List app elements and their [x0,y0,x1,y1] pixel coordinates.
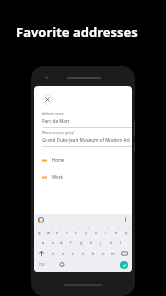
button[interactable]: , [49,259,58,270]
button[interactable]: d [57,237,66,248]
button[interactable]: 9 [111,226,121,237]
staticText: b [92,251,95,256]
button[interactable]: Emoji [58,259,66,270]
staticText: Parc de Mart [42,118,70,124]
staticText: p [125,230,128,235]
staticText: c [72,251,74,256]
staticText: ?123 [39,263,45,267]
button[interactable]: z [48,248,58,259]
button[interactable]: Home [42,154,132,166]
button[interactable]: a [39,237,48,248]
staticText: Where are you going? [42,131,75,135]
staticText: r [66,230,68,235]
staticText: 9 [118,227,120,230]
staticText: 3 [60,227,62,230]
button[interactable]: h [86,237,96,248]
button[interactable]: 5 [71,226,81,237]
button[interactable]: f [66,237,76,248]
button[interactable]: x [58,248,68,259]
staticText: q [38,230,41,235]
button[interactable]: 1 [35,226,44,237]
staticText: 4 [69,227,71,230]
staticText: a [42,240,45,245]
staticText: 5 [78,227,80,230]
button[interactable]: n [98,248,108,259]
button[interactable]: 4 [62,226,71,237]
staticText: f [70,240,72,245]
staticText: Home [52,157,65,163]
staticText: 0 [128,227,130,230]
staticText: j [100,240,102,245]
button[interactable]: 6 [81,226,91,237]
staticText: Address name [42,112,64,116]
button[interactable]: 7 [91,226,101,237]
button[interactable]: b [88,248,98,259]
button[interactable]: Shift [35,248,48,259]
staticText: t [75,230,77,235]
staticText: l [120,240,122,245]
button[interactable]: Close [42,94,53,105]
button[interactable]: Address name [42,112,132,128]
staticText: h [90,240,93,245]
staticText: s [52,240,54,245]
staticText: . [112,262,114,267]
button[interactable]: j [96,237,106,248]
staticText: 2 [51,227,53,230]
button[interactable]: c [68,248,78,259]
staticText: , [53,262,55,267]
button[interactable]: 3 [53,226,62,237]
button[interactable]: s [48,237,57,248]
staticText: 6 [88,227,90,230]
staticText: m [111,251,115,256]
staticText: w [47,230,51,235]
staticText: k [110,240,113,245]
staticText: v [82,251,85,256]
staticText: d [60,240,63,245]
staticText: o [115,230,118,235]
staticText: x [62,251,65,256]
staticText: z [52,251,54,256]
staticText: 1 [42,227,44,230]
staticText: Favorite addresses [16,23,138,41]
staticText: e [56,230,59,235]
staticText: i [105,230,107,235]
button[interactable]: k [106,237,116,248]
button[interactable]: g [76,237,86,248]
staticText: 7 [98,227,100,230]
button[interactable]: 8 [101,226,111,237]
button[interactable]: Backspace [118,248,131,259]
button[interactable]: Where are you going? [42,131,132,147]
staticText: Work [52,174,63,180]
button[interactable]: v [78,248,88,259]
staticText: y [85,230,88,235]
button[interactable]: 2 [44,226,53,237]
button[interactable]: More options [123,216,128,223]
button[interactable]: Google [38,217,44,223]
staticText: 8 [108,227,110,230]
staticText: n [102,251,105,256]
button[interactable]: Work [42,171,132,183]
staticText: Grand Duke Jean Museum of Modern Art [42,137,130,143]
staticText: u [95,230,98,235]
staticText: g [80,240,83,245]
button[interactable]: 0 [121,226,131,237]
button[interactable]: l [116,237,126,248]
button[interactable]: m [108,248,118,259]
button[interactable]: Enter [120,261,128,269]
button[interactable]: ?123 [35,259,49,270]
